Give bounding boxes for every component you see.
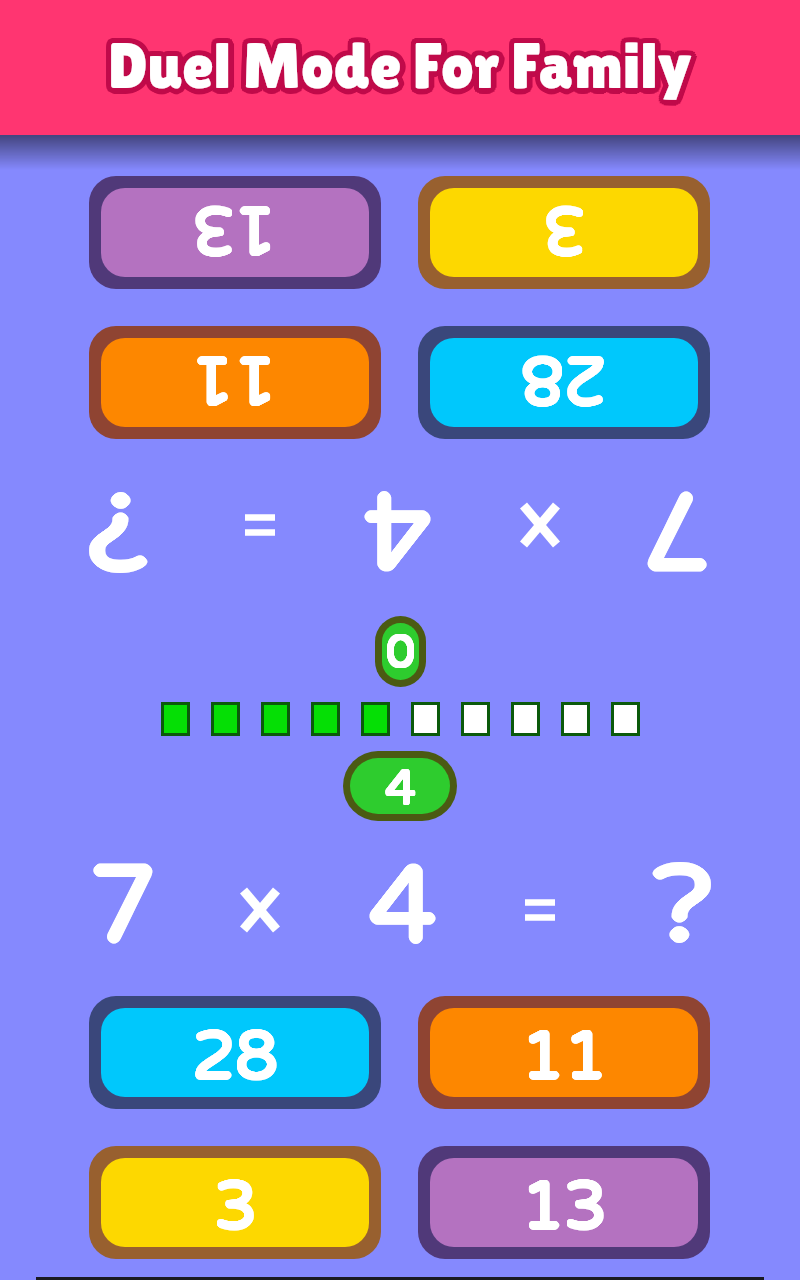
button[interactable]: 11	[418, 996, 710, 1109]
staticText: 11	[520, 1017, 606, 1097]
staticText: 3	[215, 1167, 258, 1247]
staticText: 11	[520, 1015, 606, 1097]
staticText: 11	[191, 339, 277, 421]
staticText: ?	[650, 843, 713, 973]
staticText: ?	[650, 843, 713, 973]
staticText: 13	[193, 189, 279, 271]
staticText: 4	[384, 759, 415, 814]
staticText: 4	[369, 842, 437, 972]
staticText: Duel Mode For Family	[108, 29, 692, 102]
staticText: 3	[544, 188, 587, 270]
staticText: 4	[370, 841, 438, 971]
staticText: 0	[386, 623, 415, 677]
staticText: 4	[368, 841, 436, 971]
staticText: 28	[193, 1015, 279, 1097]
staticText: 11	[521, 1018, 607, 1097]
staticText: Duel Mode For Family	[108, 35, 692, 108]
staticText: 4	[370, 843, 438, 973]
staticText: ?	[650, 841, 713, 971]
staticText: 4	[369, 844, 437, 974]
staticText: 4	[386, 760, 417, 814]
staticText: 4	[384, 759, 415, 814]
staticText: 3	[542, 188, 585, 269]
button[interactable]: 11	[89, 326, 381, 439]
staticText: 0	[385, 623, 414, 676]
button[interactable]: 28	[89, 996, 381, 1109]
staticText: ?	[653, 843, 715, 973]
staticText: ?	[650, 841, 713, 971]
staticText: 4	[385, 760, 416, 814]
staticText: 7	[641, 463, 709, 593]
staticText: 3	[213, 1165, 256, 1247]
staticText: 11	[522, 1017, 608, 1097]
staticText: ?	[84, 464, 147, 594]
button[interactable]: 3	[89, 1146, 381, 1259]
staticText: 4	[386, 759, 417, 814]
staticText: 4	[368, 843, 436, 973]
button[interactable]: 4	[343, 751, 457, 821]
staticText: 28	[191, 1017, 277, 1097]
staticText: 4	[365, 463, 433, 593]
staticText: Duel Mode For Family	[112, 25, 696, 98]
staticText: 0	[385, 623, 414, 677]
staticText: 13	[193, 188, 279, 269]
staticText: Duel Mode For Family	[114, 29, 698, 102]
staticText: 4	[364, 462, 432, 592]
staticText: 7	[88, 841, 156, 971]
staticText: 13	[191, 188, 277, 269]
staticText: 3	[215, 1165, 258, 1247]
staticText: 13	[522, 1165, 608, 1247]
button[interactable]: 0	[375, 616, 426, 687]
staticText: 4	[368, 841, 436, 971]
staticText: 13	[522, 1165, 608, 1247]
staticText: ?	[653, 841, 715, 971]
staticText: ?	[86, 461, 148, 591]
button[interactable]: 13	[418, 1146, 710, 1259]
staticText: 11	[192, 338, 278, 418]
staticText: ?	[654, 842, 717, 972]
staticText: 4	[370, 843, 438, 973]
staticText: 11	[193, 338, 279, 419]
button[interactable]: 13	[89, 176, 381, 289]
staticText: 3	[542, 189, 585, 271]
staticText: 28	[520, 338, 606, 419]
staticText: 7	[90, 843, 158, 973]
staticText: 7	[88, 841, 156, 971]
staticText: 28	[522, 339, 608, 421]
staticText: 11	[520, 1016, 606, 1097]
staticText: 7	[91, 842, 159, 972]
staticText: 11	[521, 1015, 607, 1097]
staticText: 13	[521, 1166, 607, 1247]
staticText: ?	[84, 464, 147, 594]
staticText: 11	[193, 339, 279, 421]
staticText: 13	[520, 1167, 606, 1247]
staticText: 11	[523, 1016, 609, 1097]
staticText: ?	[86, 463, 148, 593]
staticText: 28	[520, 338, 606, 419]
staticText: 4	[364, 462, 432, 592]
staticText: 28	[522, 338, 608, 419]
button[interactable]: 28	[418, 326, 710, 439]
staticText: Duel Mode For Family	[113, 31, 697, 104]
staticText: 3	[213, 1167, 256, 1247]
staticText: 28	[191, 1015, 277, 1097]
button[interactable]: 3	[418, 176, 710, 289]
staticText: 0	[387, 623, 416, 678]
staticText: 13	[520, 1165, 606, 1247]
staticText: 28	[521, 339, 607, 421]
staticText: Duel Mode For Family	[110, 24, 694, 97]
staticText: 11	[191, 338, 277, 419]
staticText: 13	[192, 188, 278, 268]
staticText: Duel Mode For Family	[106, 34, 690, 107]
staticText: 13	[193, 188, 279, 269]
staticText: 28	[191, 1017, 277, 1097]
staticText: 7	[642, 464, 710, 594]
staticText: 28	[520, 339, 606, 421]
staticText: 4	[363, 461, 431, 591]
staticText: 0	[387, 623, 416, 676]
staticText: 7	[644, 464, 712, 594]
staticText: 3	[214, 1166, 257, 1247]
staticText: 13	[520, 1166, 606, 1247]
staticText: 7	[89, 842, 157, 972]
staticText: ?	[84, 462, 147, 592]
